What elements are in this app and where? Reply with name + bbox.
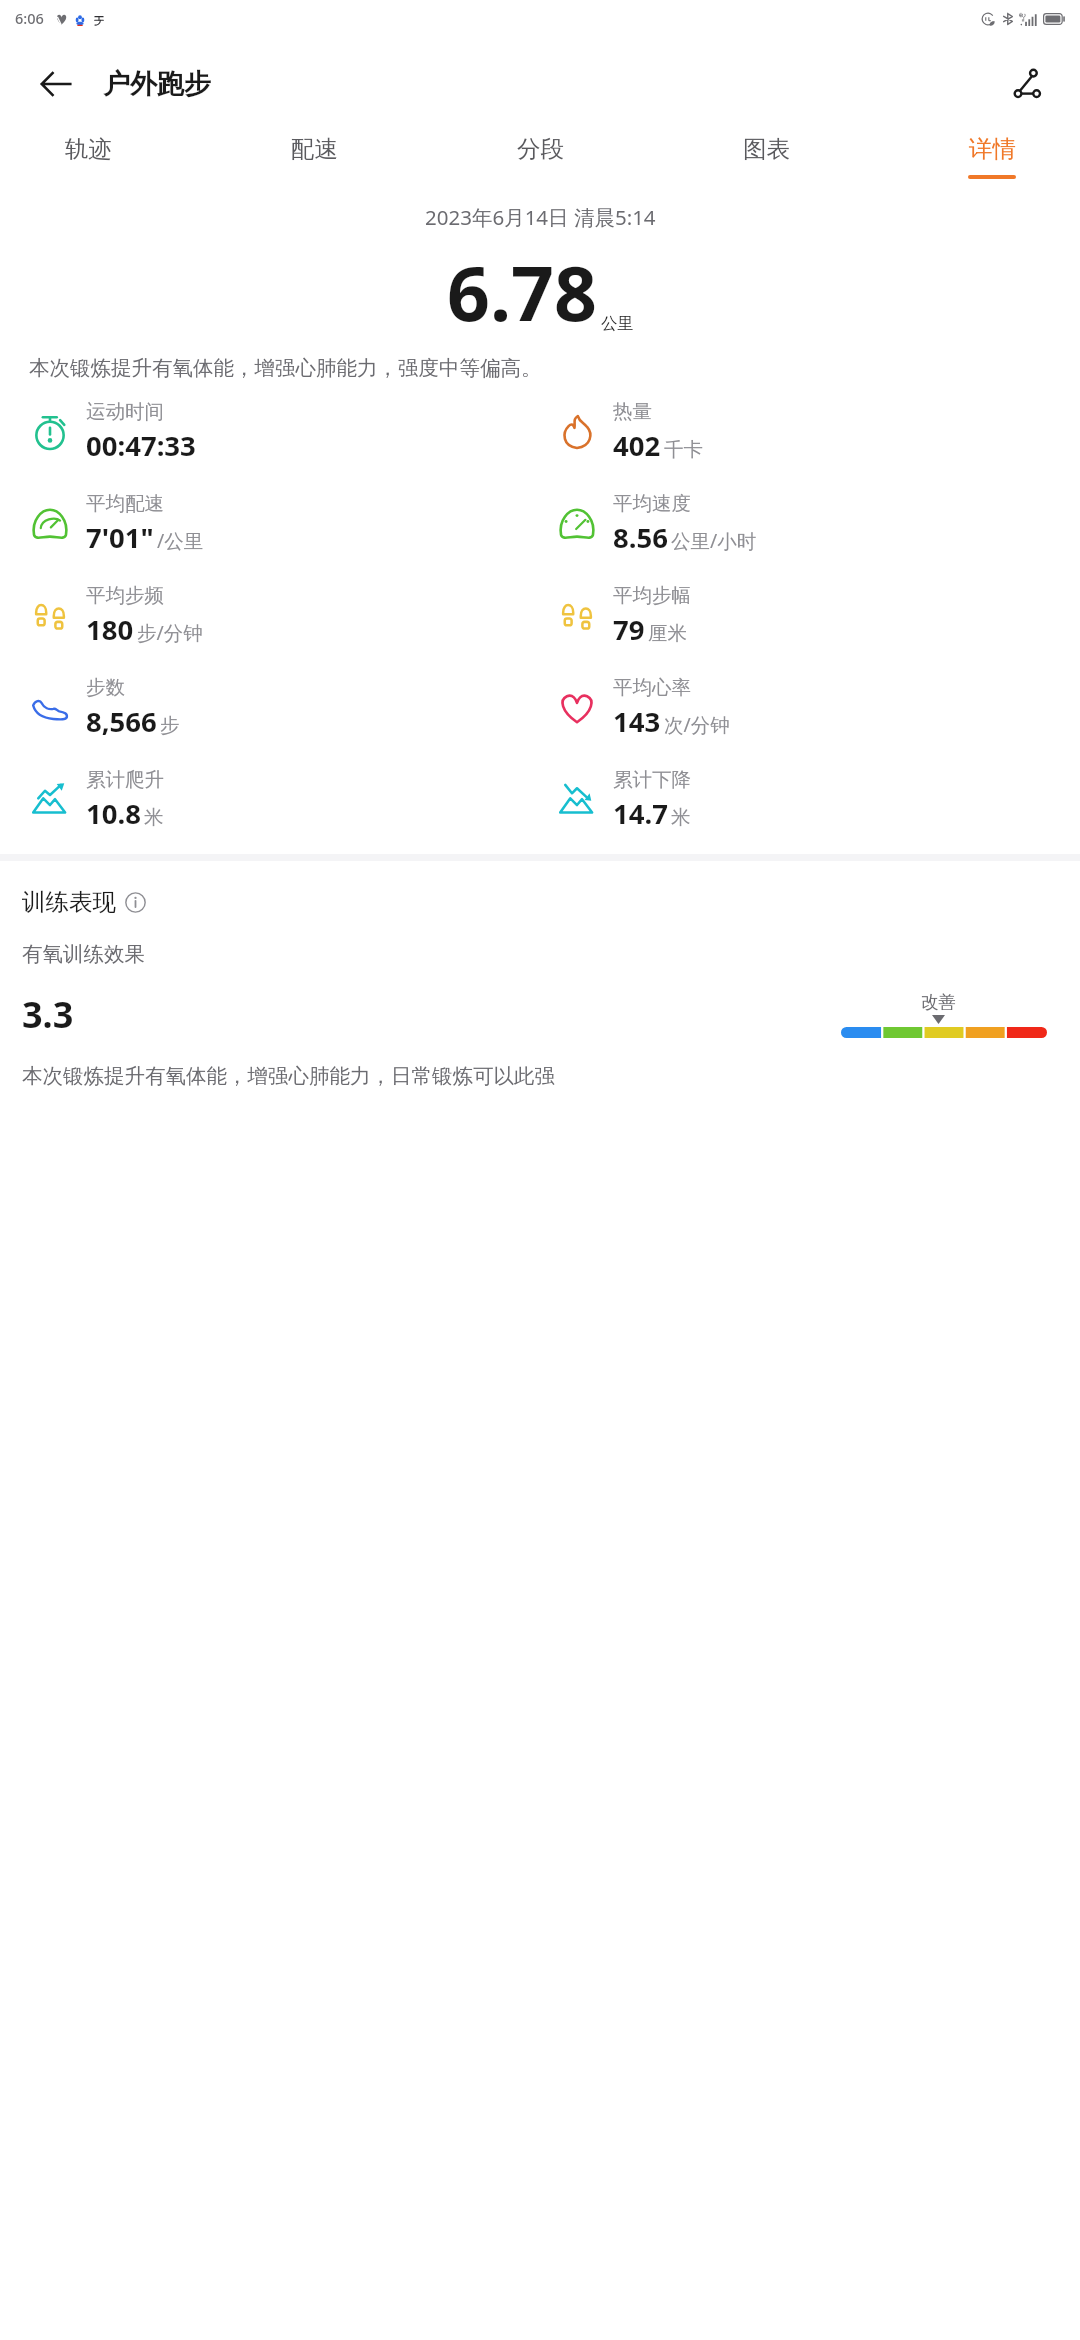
staticText: 2023年6月14日 清晨5:14 [425,203,656,231]
staticText: 8,566 [86,703,157,740]
staticText: 平均配速 [86,491,164,516]
button[interactable]: 图表 [736,130,796,183]
button[interactable]: Share [1000,57,1054,111]
staticText: 公里/小时 [671,527,757,554]
other: Info [125,892,146,913]
staticText: 累计下降 [613,767,691,792]
staticText: 143 [613,703,661,740]
staticText: 训练表现 [22,887,116,917]
button[interactable]: 运动时间 [29,399,540,464]
staticText: 分段 [517,134,564,164]
staticText: 配速 [291,134,338,164]
staticText: 轨迹 [65,134,112,164]
staticText: 米 [144,805,164,830]
button[interactable]: Back [30,58,82,110]
staticText: 本次锻炼提升有氧体能，增强心肺能力，日常锻炼可以此强 [22,1063,1074,1089]
button[interactable]: 步数 [29,675,540,740]
staticText: 本次锻炼提升有氧体能，增强心肺能力，强度中等偏高。 [29,355,1058,381]
button[interactable]: 累计下降 [556,767,1080,832]
staticText: 180 [86,611,134,648]
staticText: 8.56 [613,519,668,556]
staticText: 运动时间 [86,399,164,424]
button[interactable]: 训练表现 [22,887,146,917]
button[interactable]: 详情 [962,130,1022,183]
button[interactable]: 平均步幅 [556,583,1080,648]
staticText: 热量 [613,399,652,424]
button[interactable]: 配速 [284,130,344,183]
staticText: 公里 [601,313,634,334]
staticText: 平均步频 [86,583,164,608]
staticText: 00:47:33 [86,427,196,464]
staticText: 详情 [969,134,1016,164]
staticText: 有氧训练效果 [22,941,145,967]
staticText: 千卡 [664,437,703,462]
staticText: 次/分钟 [664,711,730,738]
staticText: 10.8 [86,795,141,832]
staticText: /公里 [157,527,204,554]
button[interactable]: 轨迹 [58,130,118,183]
staticText: 户外跑步 [103,67,211,101]
staticText: 改善 [921,991,956,1013]
button[interactable]: 平均步频 [29,583,540,648]
staticText: 7'01" [86,519,154,556]
staticText: 米 [671,805,691,830]
button[interactable]: 平均速度 [556,491,1080,556]
staticText: 平均心率 [613,675,691,700]
button[interactable]: 平均配速 [29,491,540,556]
staticText: 图表 [743,134,790,164]
button[interactable]: 分段 [510,130,570,183]
staticText: 平均步幅 [613,583,691,608]
staticText: 402 [613,427,661,464]
staticText: 步/分钟 [137,619,203,646]
button[interactable]: 热量 [556,399,1080,464]
staticText: 3.3 [22,990,74,1039]
staticText: 14.7 [613,795,668,832]
staticText: 厘米 [648,621,687,646]
button[interactable]: 平均心率 [556,675,1080,740]
staticText: 步数 [86,675,125,700]
staticText: 累计爬升 [86,767,164,792]
button[interactable]: 累计爬升 [29,767,540,832]
staticText: 6:06 [15,8,44,28]
staticText: 6.78 [447,241,597,343]
staticText: 平均速度 [613,491,691,516]
staticText: 79 [613,611,645,648]
staticText: 步 [160,713,180,738]
